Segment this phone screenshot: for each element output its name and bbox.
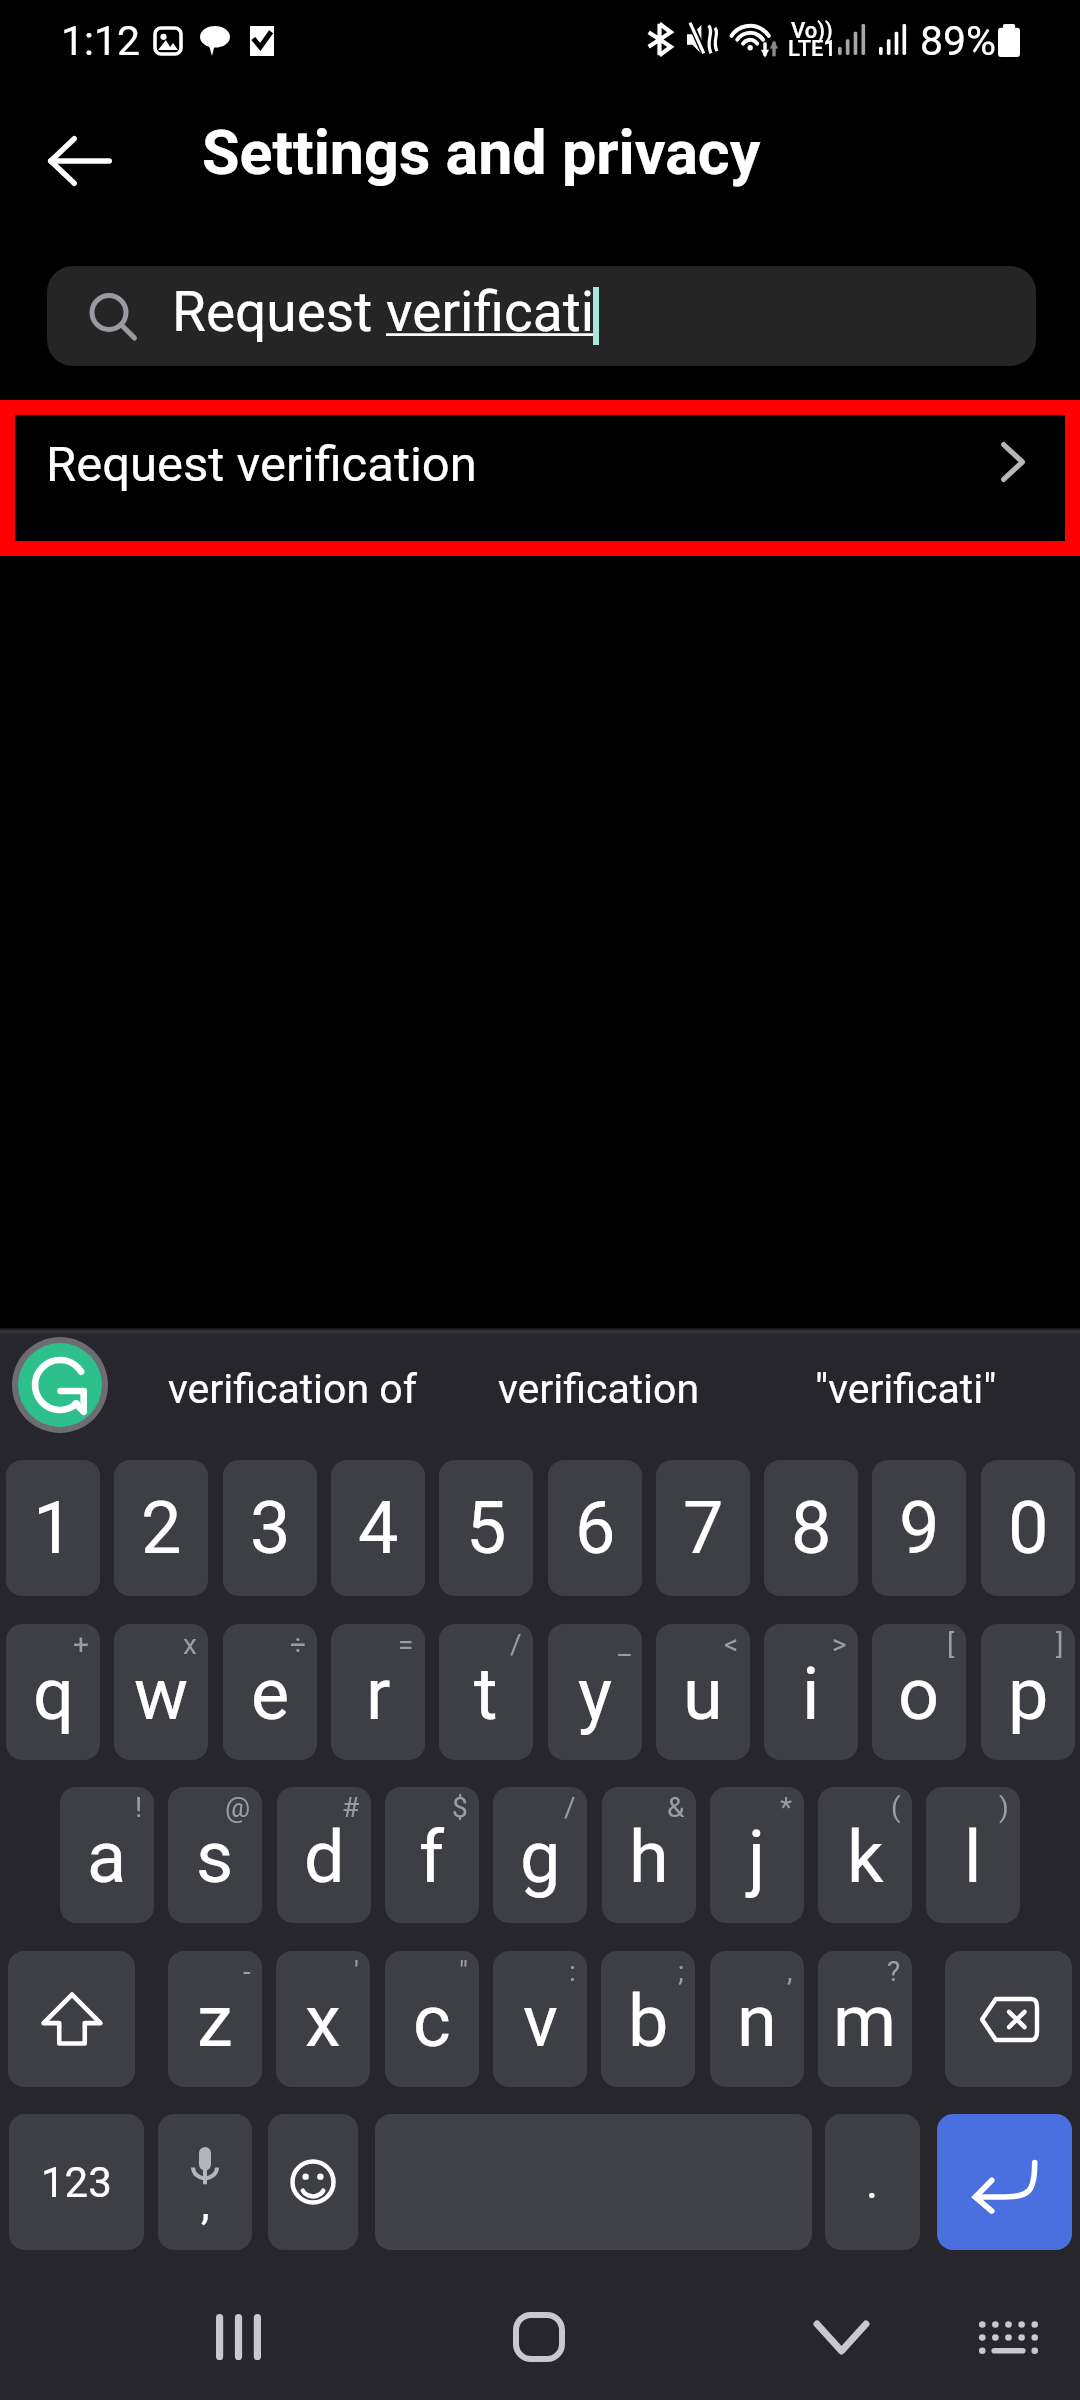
staticText: 5 xyxy=(466,1486,507,1570)
button[interactable]: / xyxy=(493,1787,587,1923)
staticText: , xyxy=(201,2178,210,2230)
staticText: t xyxy=(474,1652,498,1736)
staticText: ( xyxy=(891,1791,901,1824)
button[interactable]: ( xyxy=(818,1787,912,1923)
staticText: 0 xyxy=(1008,1486,1049,1570)
staticText: Vo)) xyxy=(791,18,833,44)
staticText: i xyxy=(802,1652,820,1736)
staticText: n xyxy=(737,1979,777,2063)
button[interactable]: ' xyxy=(276,1951,370,2087)
staticText: l xyxy=(964,1815,982,1899)
staticText: , xyxy=(787,1955,793,1988)
staticText: Request xyxy=(172,280,386,344)
button[interactable]: Shift xyxy=(8,1951,135,2087)
staticText: < xyxy=(724,1628,739,1661)
staticText: j xyxy=(748,1815,766,1899)
staticText: $ xyxy=(452,1791,468,1824)
button[interactable]: Grammarly xyxy=(12,1337,108,1433)
button[interactable]: 9 xyxy=(872,1460,966,1596)
button[interactable]: - xyxy=(168,1951,262,2087)
button[interactable]: Change keyboard xyxy=(948,2287,1068,2387)
button[interactable]: 4 xyxy=(331,1460,425,1596)
button[interactable]: * xyxy=(710,1787,804,1923)
button[interactable]: 0 xyxy=(981,1460,1075,1596)
button[interactable]: [ xyxy=(872,1624,966,1760)
button[interactable]: . xyxy=(825,2114,920,2250)
staticText: 3 xyxy=(250,1486,291,1570)
button[interactable]: ? xyxy=(818,1951,912,2087)
staticText: y xyxy=(578,1652,613,1736)
button[interactable]: 8 xyxy=(764,1460,858,1596)
staticText: _ xyxy=(618,1628,631,1661)
button[interactable]: 6 xyxy=(548,1460,642,1596)
staticText: ) xyxy=(999,1791,1009,1824)
staticText: Request verification xyxy=(46,436,477,493)
staticText: : xyxy=(569,1955,576,1988)
button[interactable]: : xyxy=(493,1951,587,2087)
button[interactable]: / xyxy=(439,1624,533,1760)
button[interactable]: ] xyxy=(981,1624,1075,1760)
button[interactable]: verification of xyxy=(140,1358,445,1420)
staticText: = xyxy=(398,1628,414,1661)
button[interactable]: Emoji xyxy=(268,2114,358,2250)
staticText: r xyxy=(366,1652,391,1736)
button[interactable]: > xyxy=(764,1624,858,1760)
staticText: / xyxy=(564,1791,576,1824)
button[interactable]: Back xyxy=(26,116,134,206)
button[interactable]: Voice input xyxy=(158,2114,252,2250)
staticText: m xyxy=(833,1979,897,2063)
button[interactable]: Hide keyboard xyxy=(781,2287,901,2387)
staticText: verification of xyxy=(168,1365,417,1413)
staticText: b xyxy=(628,1979,669,2063)
button[interactable]: ; xyxy=(601,1951,695,2087)
staticText: @ xyxy=(225,1791,251,1824)
button[interactable]: Enter xyxy=(937,2114,1072,2250)
button[interactable]: Home xyxy=(479,2287,599,2387)
button[interactable]: 7 xyxy=(656,1460,750,1596)
button[interactable]: Request xyxy=(47,266,1036,366)
button[interactable]: # xyxy=(277,1787,371,1923)
staticText: [ xyxy=(947,1628,955,1661)
button[interactable]: Backspace xyxy=(945,1951,1072,2087)
staticText: / xyxy=(510,1628,522,1661)
staticText: 9 xyxy=(899,1486,940,1570)
button[interactable]: _ xyxy=(548,1624,642,1760)
button[interactable]: 3 xyxy=(223,1460,317,1596)
button[interactable]: ÷ xyxy=(223,1624,317,1760)
staticText: o xyxy=(898,1652,940,1736)
staticText: - xyxy=(243,1955,251,1988)
staticText: z xyxy=(197,1979,233,2063)
button[interactable]: < xyxy=(656,1624,750,1760)
button[interactable]: ) xyxy=(926,1787,1020,1923)
button[interactable]: ! xyxy=(60,1787,154,1923)
button[interactable]: x xyxy=(114,1624,208,1760)
button[interactable]: = xyxy=(331,1624,425,1760)
staticText: 89% xyxy=(920,17,997,65)
button[interactable]: 1 xyxy=(6,1460,100,1596)
button[interactable]: Recents xyxy=(178,2287,298,2387)
button[interactable]: "verificati" xyxy=(788,1358,1024,1420)
staticText: > xyxy=(832,1628,847,1661)
button[interactable]: " xyxy=(385,1951,479,2087)
button[interactable]: 123 xyxy=(9,2114,144,2250)
staticText: 1 xyxy=(33,1486,74,1570)
staticText: "verificati" xyxy=(815,1365,997,1413)
button[interactable]: & xyxy=(602,1787,696,1923)
button[interactable]: Request verification xyxy=(0,400,1080,556)
staticText: 6 xyxy=(575,1486,616,1570)
staticText: v xyxy=(523,1979,558,2063)
button[interactable]: verification xyxy=(470,1358,728,1420)
button[interactable]: , xyxy=(710,1951,804,2087)
button[interactable]: $ xyxy=(385,1787,479,1923)
button[interactable]: @ xyxy=(168,1787,262,1923)
staticText: w xyxy=(134,1652,189,1736)
staticText: # xyxy=(342,1791,360,1824)
button[interactable]: + xyxy=(6,1624,100,1760)
staticText: d xyxy=(304,1815,345,1899)
button[interactable]: 2 xyxy=(114,1460,208,1596)
staticText: ? xyxy=(887,1955,901,1988)
button[interactable]: 5 xyxy=(439,1460,533,1596)
staticText: & xyxy=(667,1791,685,1824)
staticText: . xyxy=(866,2155,879,2209)
